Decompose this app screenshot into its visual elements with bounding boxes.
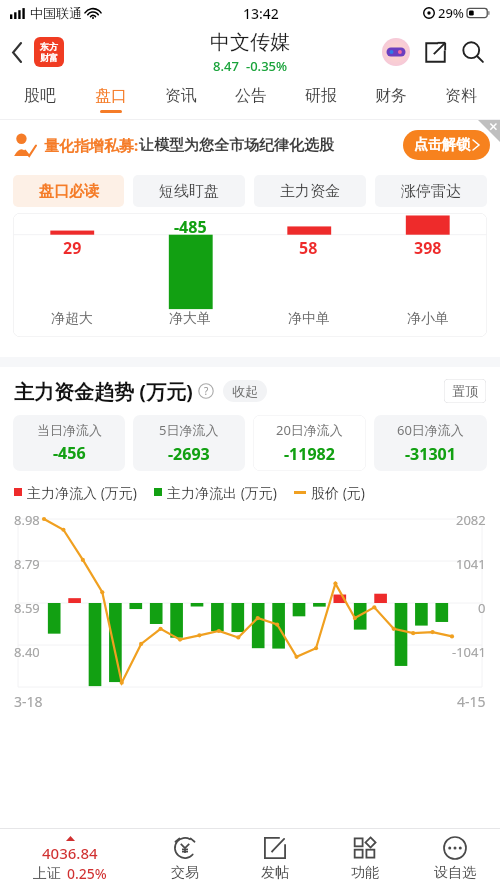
button[interactable]: 资讯	[146, 78, 216, 120]
staticText: 财富	[40, 52, 58, 63]
staticText: 0.25%	[67, 864, 107, 883]
staticText: 股价 (元)	[311, 483, 366, 502]
button[interactable]: Help	[198, 383, 214, 399]
staticText: 股吧	[24, 86, 56, 106]
staticText: 公告	[235, 86, 267, 106]
staticText: 量化指增私募:	[44, 135, 139, 155]
button[interactable]: 设自选	[410, 829, 500, 889]
staticText: 中国联通	[30, 5, 82, 21]
staticText: 交易	[171, 864, 199, 882]
staticText: 净小单	[407, 310, 449, 328]
button[interactable]: 研报	[286, 78, 356, 120]
staticText: 8.79	[14, 555, 40, 573]
staticText: 60日净流入	[397, 421, 464, 439]
staticText: -1041	[452, 643, 486, 661]
staticText: 财务	[375, 86, 407, 106]
button[interactable]: Back	[0, 26, 34, 78]
button[interactable]: 收起	[223, 380, 267, 402]
staticText: 盘口必读	[39, 182, 99, 201]
staticText: -11982	[284, 443, 335, 465]
staticText: 净中单	[288, 310, 330, 328]
staticText: 研报	[305, 86, 337, 106]
button[interactable]: 4036.84	[0, 829, 140, 889]
staticText: 13:42	[243, 4, 279, 23]
button[interactable]: 量化指增私募:	[10, 120, 490, 170]
staticText: 短线盯盘	[159, 182, 219, 201]
button[interactable]: 置顶	[444, 379, 486, 403]
button[interactable]: 涨停雷达	[375, 175, 487, 207]
staticText: 涨停雷达	[401, 182, 461, 201]
button[interactable]: 交易	[140, 829, 230, 889]
button[interactable]: 东方财富	[34, 37, 64, 67]
staticText: 29	[63, 237, 82, 259]
button[interactable]: Close	[478, 120, 500, 142]
staticText: 29%	[438, 4, 464, 22]
staticText: 1041	[456, 555, 486, 573]
staticText: 5日净流入	[159, 421, 219, 439]
staticText: 3-18	[14, 692, 43, 711]
staticText: 设自选	[434, 864, 476, 882]
staticText: 发帖	[261, 864, 289, 882]
staticText: 8.47	[213, 57, 239, 75]
button[interactable]: 盘口	[75, 78, 146, 120]
staticText: -31301	[405, 443, 456, 465]
staticText: 东方	[40, 41, 58, 52]
staticText: ?	[204, 384, 209, 398]
staticText: 8.59	[14, 599, 40, 617]
staticText: 让模型为您全市场纪律化选股	[139, 136, 334, 155]
button[interactable]: 资料	[426, 78, 496, 120]
staticText: 主力资金趋势 (万元)	[14, 378, 193, 405]
staticText: -456	[53, 442, 86, 464]
button[interactable]: 公告	[216, 78, 286, 120]
button[interactable]: 主力资金	[254, 175, 366, 207]
staticText: 58	[299, 237, 318, 259]
button[interactable]: 财务	[356, 78, 426, 120]
staticText: -2693	[168, 443, 210, 465]
button[interactable]: 短线盯盘	[133, 175, 245, 207]
staticText: 8.40	[14, 643, 40, 661]
button[interactable]: AI assistant	[378, 34, 414, 70]
button[interactable]: 股吧	[4, 78, 75, 120]
button[interactable]: 当日净流入	[13, 415, 125, 471]
staticText: 置顶	[452, 383, 478, 399]
button[interactable]: 5日净流入	[133, 415, 245, 471]
button[interactable]: Share	[416, 33, 454, 71]
staticText: 资料	[445, 86, 477, 106]
staticText: 盘口	[95, 86, 127, 106]
staticText: -485	[174, 216, 207, 238]
staticText: 0	[478, 599, 486, 617]
button[interactable]: 点击解锁	[403, 130, 490, 160]
button[interactable]: 盘口必读	[13, 175, 124, 207]
button[interactable]: 功能	[320, 829, 410, 889]
staticText: 主力净流出 (万元)	[167, 483, 278, 502]
staticText: 净大单	[169, 310, 211, 328]
staticText: 点击解锁	[414, 136, 470, 154]
button[interactable]: 60日净流入	[374, 415, 487, 471]
staticText: 2082	[456, 511, 486, 529]
staticText: 功能	[351, 864, 379, 882]
staticText: 398	[414, 237, 442, 259]
staticText: 上证	[33, 865, 61, 883]
button[interactable]: 20日净流入	[253, 415, 366, 471]
staticText: 净超大	[51, 310, 93, 328]
staticText: 资讯	[165, 86, 197, 106]
staticText: 4036.84	[42, 843, 98, 863]
staticText: 4-15	[457, 692, 486, 711]
button[interactable]: Search	[454, 33, 492, 71]
staticText: 8.98	[14, 511, 40, 529]
staticText: 主力净流入 (万元)	[27, 483, 138, 502]
staticText: 收起	[232, 383, 258, 399]
staticText: 当日净流入	[37, 422, 102, 438]
staticText: 中文传媒	[210, 30, 290, 55]
button[interactable]: 发帖	[230, 829, 320, 889]
staticText: 20日净流入	[276, 421, 343, 439]
staticText: -0.35%	[246, 57, 288, 75]
staticText: 主力资金	[280, 182, 340, 201]
